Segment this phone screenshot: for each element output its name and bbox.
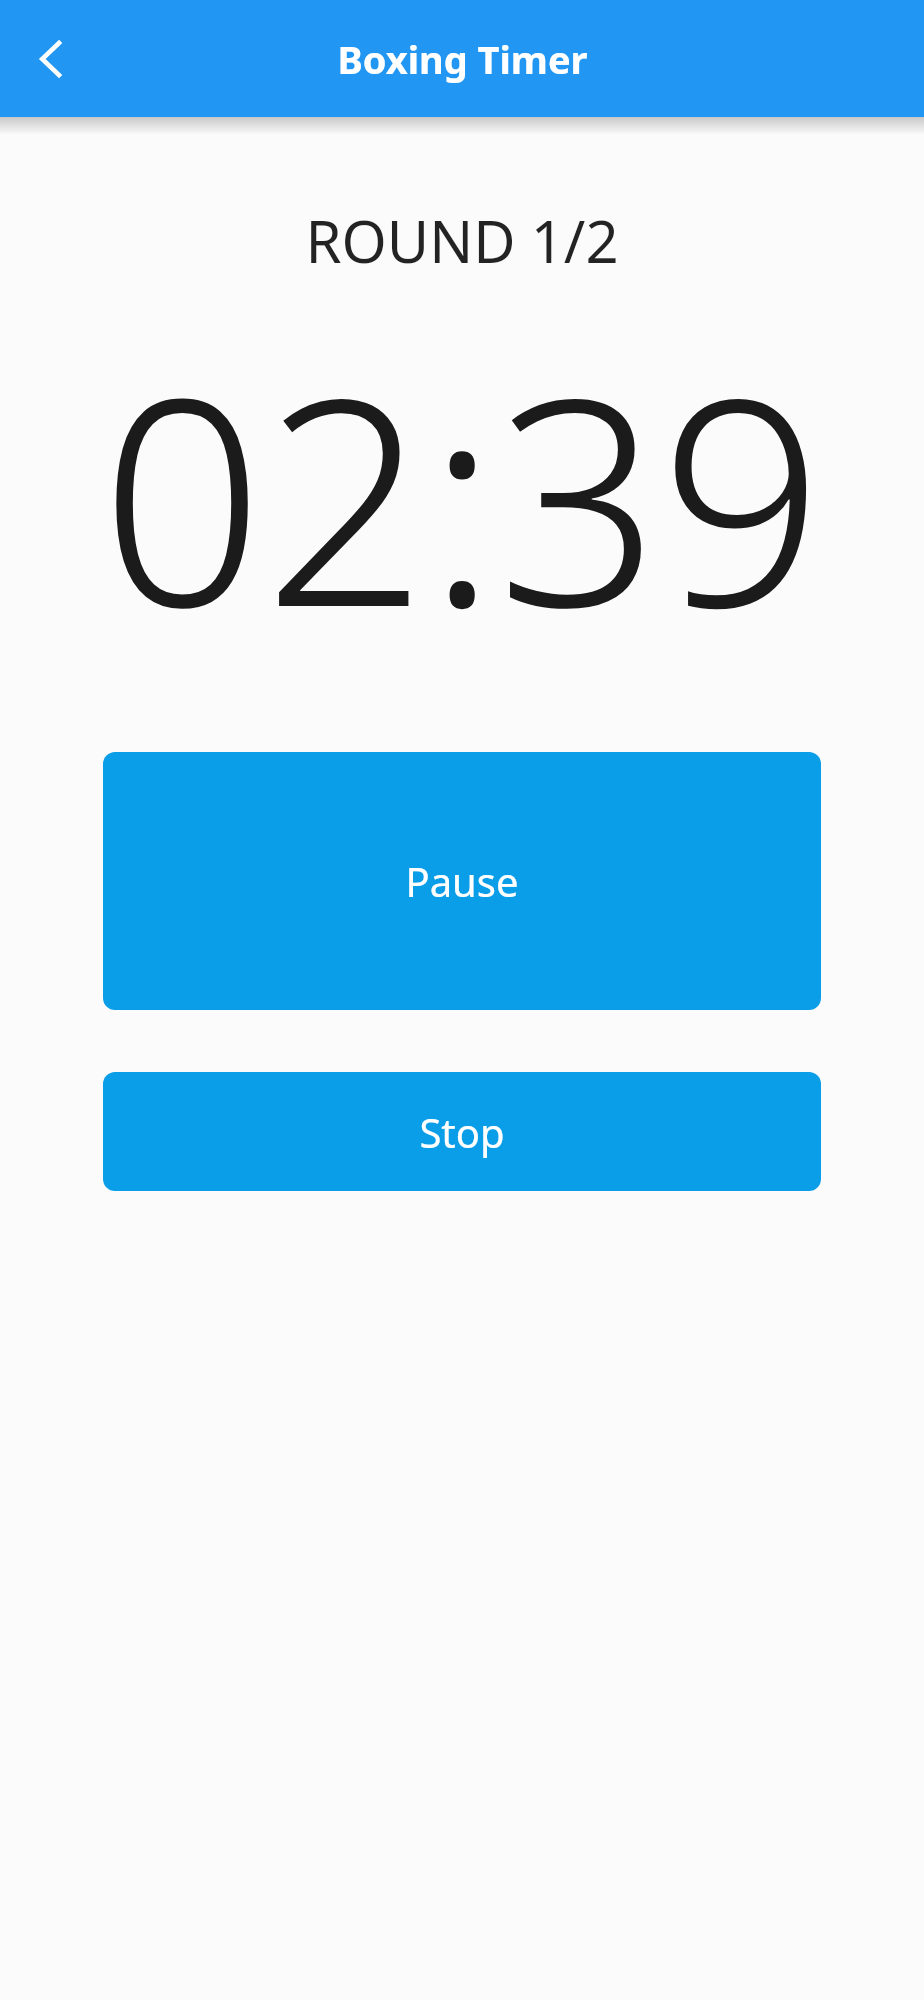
button[interactable]: Back	[14, 22, 88, 96]
staticText: Boxing Timer	[337, 33, 588, 85]
staticText: Pause	[405, 854, 519, 908]
button[interactable]: Pause	[103, 752, 821, 1010]
staticText: Stop	[419, 1105, 505, 1159]
staticText: 02:39	[100, 300, 824, 690]
staticText: ROUND 1/2	[305, 201, 619, 280]
button[interactable]: Stop	[103, 1072, 821, 1191]
